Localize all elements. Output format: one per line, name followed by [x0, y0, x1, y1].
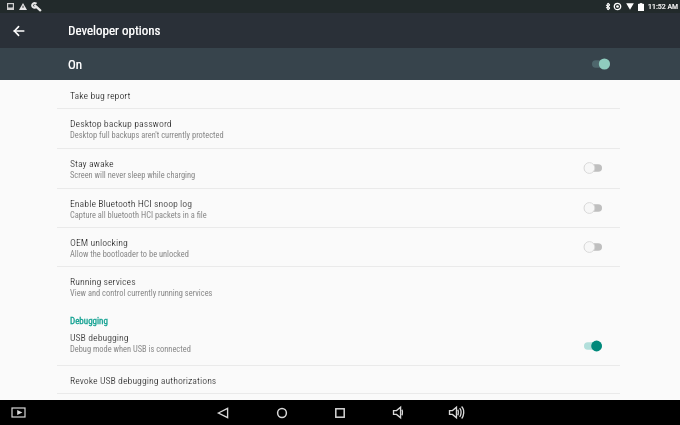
staticText: Take bug report	[70, 90, 131, 101]
button[interactable]: Stay awake	[0, 148, 680, 188]
button[interactable]: Volume up	[446, 400, 466, 425]
staticText: Debug mode when USB is connected	[70, 344, 191, 354]
button[interactable]: Back	[213, 400, 233, 425]
button[interactable]: Take bug report	[0, 80, 680, 108]
staticText: OEM unlocking	[70, 237, 128, 248]
staticText: Enable Bluetooth HCI snoop log	[70, 198, 193, 209]
button[interactable]: Home	[272, 400, 292, 425]
staticText: View and control currently running servi…	[70, 288, 213, 298]
staticText: Desktop full backups aren't currently pr…	[70, 130, 224, 140]
button[interactable]: Running services	[0, 266, 680, 305]
staticText: On	[68, 57, 83, 72]
button[interactable]: Volume down	[388, 400, 408, 425]
staticText: Running services	[70, 276, 136, 287]
staticText: 11:52 AM	[648, 2, 679, 11]
button[interactable]: OEM unlocking	[0, 227, 680, 266]
staticText: Allow the bootloader to be unlocked	[70, 249, 189, 259]
button[interactable]: Revoke USB debugging authorizations	[0, 365, 680, 393]
staticText: Screen will never sleep while charging	[70, 170, 196, 180]
staticText: Revoke USB debugging authorizations	[70, 375, 217, 386]
button[interactable]: USB debugging	[0, 326, 680, 365]
staticText: Developer options	[68, 23, 161, 38]
button[interactable]: Desktop backup password	[0, 108, 680, 148]
staticText: Capture all bluetooth HCI packets in a f…	[70, 210, 207, 220]
button[interactable]: Enable Bluetooth HCI snoop log	[0, 188, 680, 227]
button[interactable]: Recent apps	[330, 400, 350, 425]
button[interactable]: Back	[0, 13, 38, 48]
staticText: Desktop backup password	[70, 118, 172, 129]
staticText: Debugging	[70, 316, 108, 327]
staticText: Stay awake	[70, 158, 114, 169]
button[interactable]: Screenshot	[8, 400, 28, 425]
staticText: USB debugging	[70, 332, 129, 343]
button[interactable]: On	[0, 48, 680, 80]
button[interactable]: Debugging	[0, 305, 680, 326]
